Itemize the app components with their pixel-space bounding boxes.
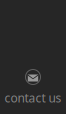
button[interactable]: contact us <box>4 69 61 106</box>
staticText: contact us <box>4 90 61 106</box>
